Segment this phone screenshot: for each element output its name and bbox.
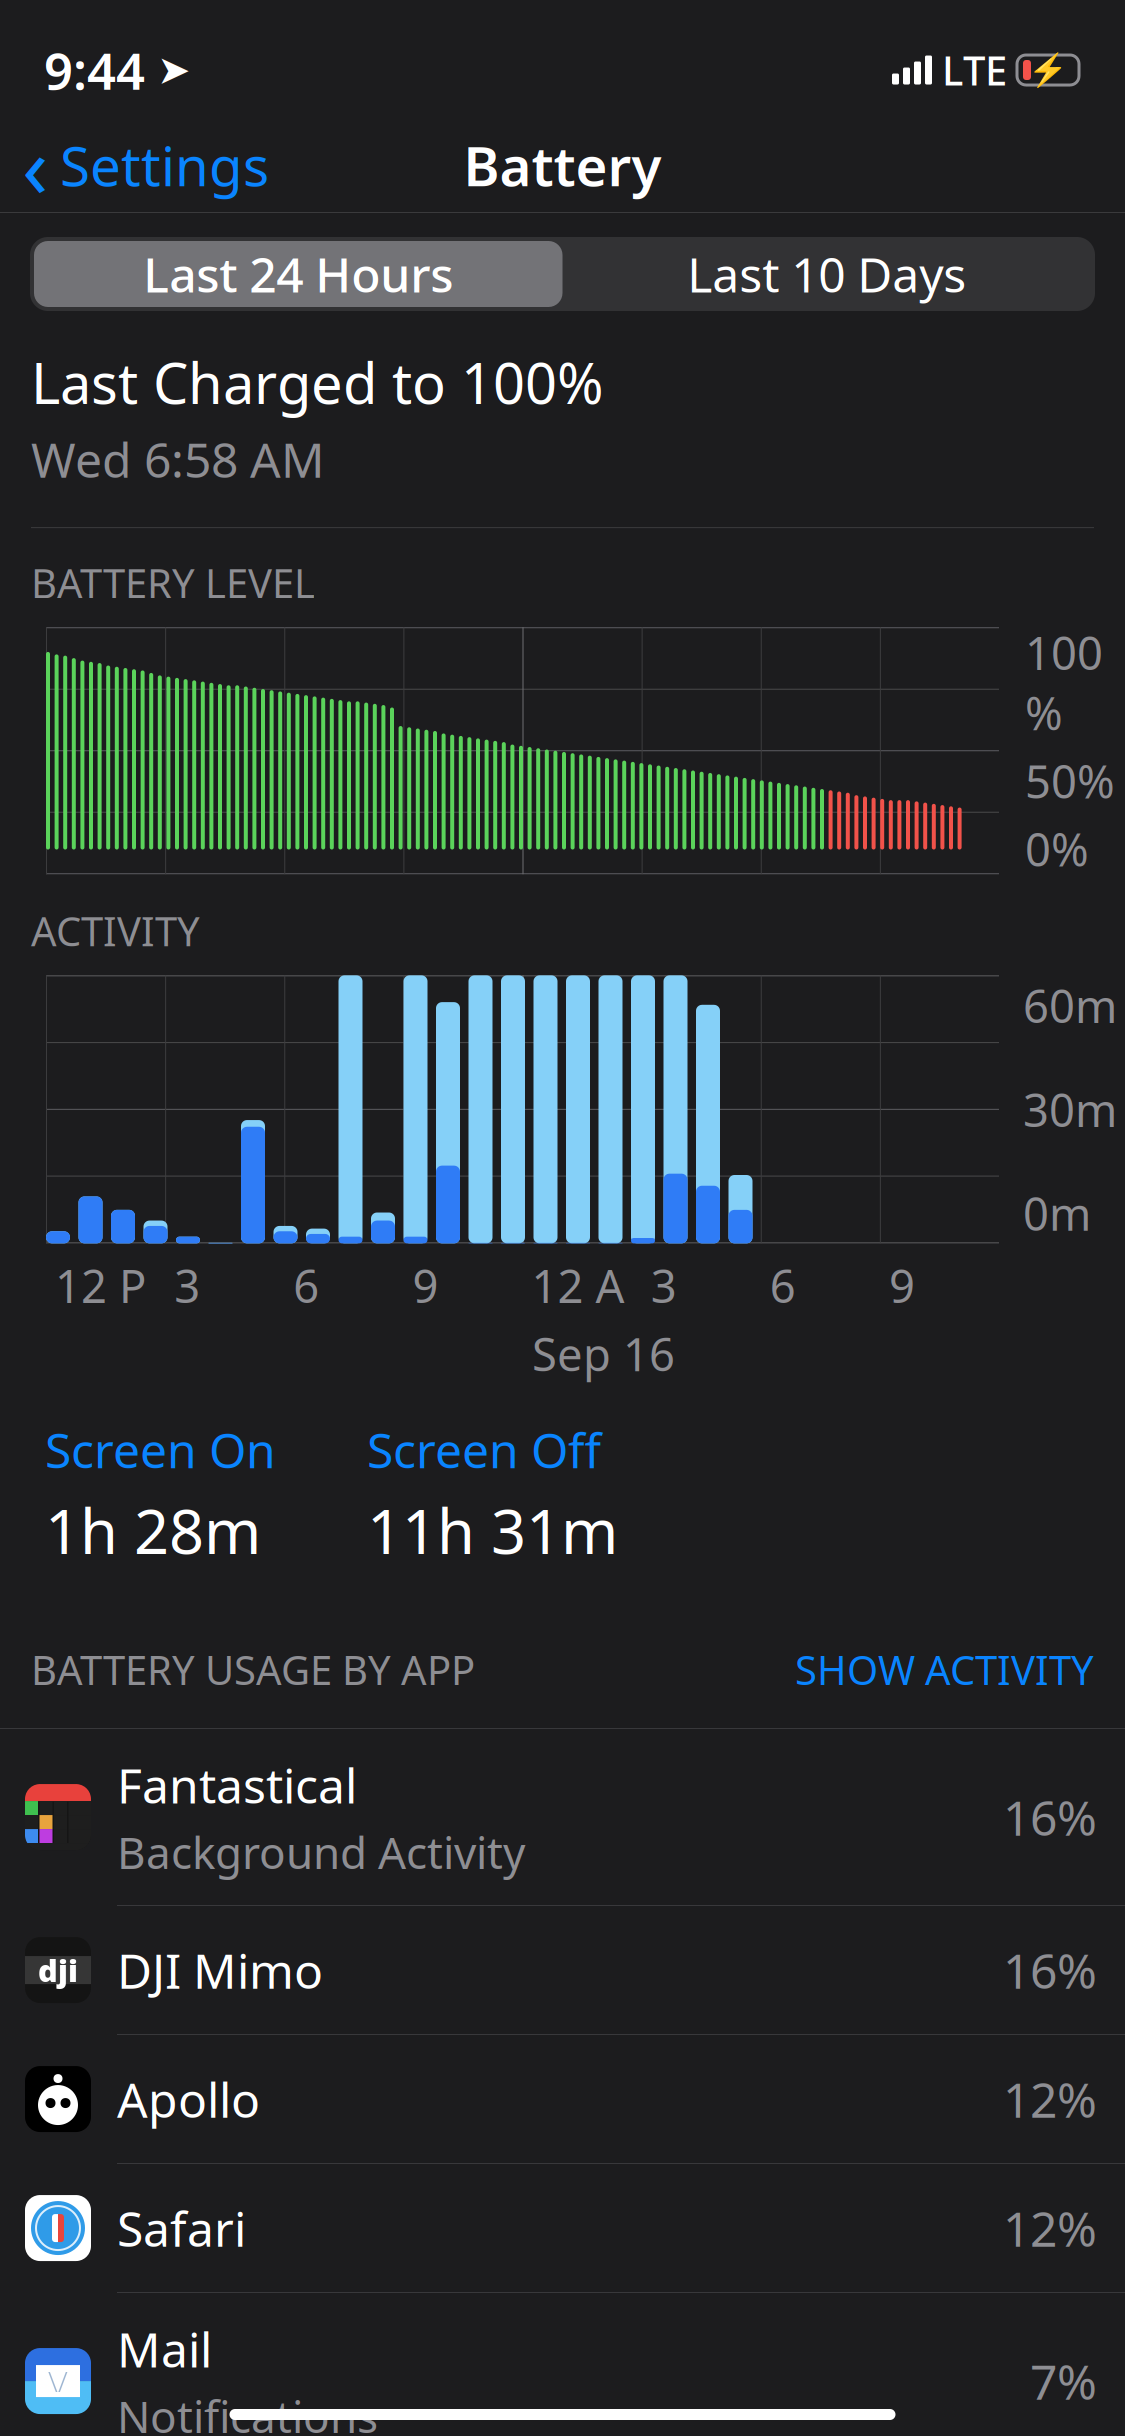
- staticText: Sep 16: [532, 1323, 675, 1384]
- staticText: 100%: [1025, 622, 1103, 743]
- staticText: 6: [293, 1255, 319, 1315]
- staticText: Notifications: [117, 2387, 378, 2436]
- staticText: 9:44: [44, 36, 145, 104]
- staticText: 3: [651, 1255, 677, 1315]
- staticText: 3: [174, 1255, 200, 1315]
- staticText: ACTIVITY: [31, 904, 200, 957]
- staticText: 9: [412, 1255, 438, 1315]
- staticText: Battery: [463, 129, 661, 201]
- staticText: 11h 31m: [367, 1489, 618, 1571]
- staticText: 6: [770, 1255, 796, 1315]
- staticText: \/: [48, 2362, 68, 2400]
- button[interactable]: Apollo: [0, 2035, 1125, 2164]
- staticText: 0%: [1025, 819, 1089, 879]
- staticText: 30m: [1023, 1079, 1117, 1139]
- staticText: BATTERY USAGE BY APP: [31, 1643, 475, 1696]
- staticText: Background Activity: [117, 1823, 525, 1881]
- button[interactable]: Safari: [0, 2164, 1125, 2293]
- staticText: 12 P: [55, 1255, 146, 1315]
- button[interactable]: Last 24 Hours: [0, 213, 1125, 311]
- staticText: 12%: [1003, 2196, 1097, 2260]
- staticText: Last 10 Days: [687, 242, 966, 306]
- staticText: 60m: [1023, 975, 1117, 1035]
- staticText: Last 24 Hours: [143, 242, 453, 306]
- staticText: 12 A: [531, 1255, 624, 1315]
- staticText: dji: [38, 1950, 78, 1990]
- staticText: 50%: [1025, 751, 1115, 811]
- staticText: 16%: [1003, 1938, 1097, 2002]
- staticText: ➤: [157, 47, 191, 93]
- staticText: Screen On: [45, 1418, 276, 1481]
- staticText: Mail: [117, 2317, 212, 2381]
- button[interactable]: SHOW ACTIVITY: [795, 1633, 1094, 1706]
- button[interactable]: Fantastical: [0, 1729, 1125, 1906]
- staticText: ‹: [22, 108, 48, 222]
- staticText: LTE: [942, 43, 1007, 96]
- staticText: 0m: [1023, 1183, 1091, 1243]
- staticText: 1h 28m: [45, 1489, 261, 1571]
- staticText: Wed 6:58 AM: [31, 427, 325, 491]
- staticText: SHOW ACTIVITY: [795, 1643, 1094, 1696]
- staticText: 9: [889, 1255, 915, 1315]
- staticText: 7%: [1030, 2349, 1097, 2413]
- staticText: Last Charged to 100%: [31, 345, 604, 419]
- staticText: ⚡: [1028, 52, 1068, 88]
- staticText: DJI Mimo: [117, 1938, 323, 2002]
- staticText: 12%: [1003, 2067, 1097, 2131]
- button[interactable]: \/: [0, 2293, 1125, 2436]
- staticText: Settings: [60, 129, 269, 201]
- staticText: BATTERY LEVEL: [31, 556, 315, 609]
- staticText: Screen Off: [367, 1418, 601, 1481]
- staticText: 16%: [1003, 1785, 1097, 1849]
- button[interactable]: dji: [0, 1906, 1125, 2035]
- staticText: Fantastical: [117, 1753, 357, 1817]
- button[interactable]: ‹: [0, 100, 269, 230]
- staticText: Apollo: [117, 2067, 260, 2131]
- staticText: Safari: [117, 2196, 246, 2260]
